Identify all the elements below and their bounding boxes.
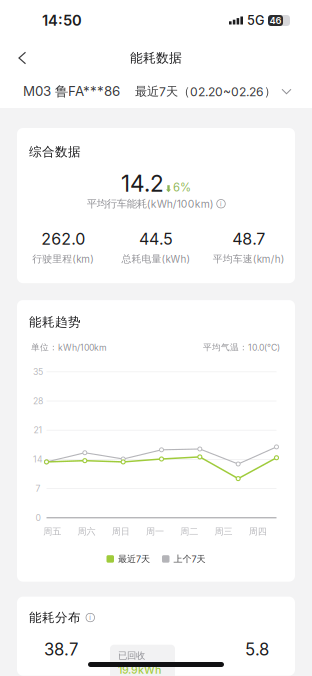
- staticText: 6%: [173, 180, 191, 194]
- staticText: 28: [33, 396, 43, 406]
- staticText: 14: [33, 454, 43, 465]
- staticText: 周四: [249, 526, 267, 537]
- staticText: 最近7天: [118, 553, 150, 565]
- staticText: 行驶里程(km): [32, 253, 94, 265]
- staticText: 5G: [247, 13, 264, 28]
- staticText: 上个7天: [173, 553, 205, 565]
- staticText: 44.5: [139, 229, 173, 249]
- staticText: 平均车速(km/h): [213, 253, 285, 265]
- staticText: 综合数据: [29, 144, 81, 160]
- button[interactable]: M03 鲁FA***86: [23, 76, 120, 107]
- button[interactable]: Back: [0, 44, 40, 72]
- staticText: 单位：kWh/100km: [31, 342, 107, 353]
- staticText: 周日: [112, 526, 130, 537]
- staticText: 262.0: [41, 229, 85, 249]
- staticText: 总耗电量(kWh): [121, 253, 190, 265]
- staticText: 周五: [43, 526, 61, 537]
- staticText: 平均气温：10.0(°C): [203, 342, 280, 353]
- staticText: 46: [269, 15, 281, 26]
- button[interactable]: 最近7天（02.20~02.26）: [135, 77, 291, 106]
- staticText: 14:50: [42, 12, 82, 29]
- staticText: 能耗数据: [130, 50, 182, 66]
- staticText: 能耗趋势: [29, 314, 81, 330]
- staticText: 周三: [215, 526, 233, 537]
- staticText: 5.8: [245, 639, 269, 660]
- staticText: 48.7: [232, 229, 265, 249]
- staticText: i: [89, 614, 91, 622]
- staticText: M03 鲁FA***86: [23, 83, 120, 100]
- staticText: 能耗分布: [29, 610, 81, 625]
- staticText: 35: [33, 367, 43, 377]
- staticText: 最近7天（02.20~02.26）: [135, 84, 276, 99]
- staticText: 38.7: [44, 639, 78, 660]
- staticText: 21: [33, 425, 42, 435]
- staticText: 7: [35, 483, 40, 494]
- staticText: 周一: [146, 526, 164, 537]
- staticText: i: [220, 200, 222, 208]
- staticText: 平均行车能耗(kWh/100km): [87, 197, 214, 210]
- staticText: 19.9kWh: [118, 663, 161, 676]
- staticText: 周二: [180, 526, 198, 537]
- staticText: 周六: [77, 526, 95, 537]
- staticText: 0: [35, 513, 40, 523]
- staticText: 已回收: [118, 650, 145, 661]
- staticText: 14.2: [121, 170, 164, 197]
